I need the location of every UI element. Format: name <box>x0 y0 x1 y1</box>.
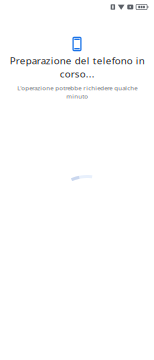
staticText: L'operazione potrebbe richiedere qualche… <box>17 84 137 100</box>
staticText: Preparazione del telefono in corso... <box>9 54 144 80</box>
